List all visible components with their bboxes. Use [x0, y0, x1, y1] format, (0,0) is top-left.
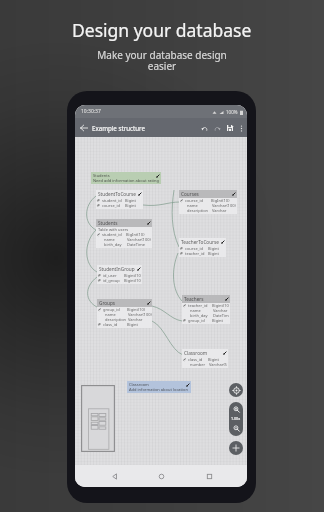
button[interactable]: Redo [211, 122, 223, 134]
staticText: Students [93, 173, 110, 178]
staticText: birth_day [104, 242, 122, 247]
staticText: StudentToCourse [98, 191, 136, 197]
button[interactable]: StudentInGroup [97, 265, 142, 284]
staticText: id_user [103, 273, 117, 278]
staticText: Bigint [208, 246, 220, 251]
staticText: name [104, 237, 115, 242]
button[interactable]: StudentToCourse [96, 190, 143, 209]
button[interactable]: Courses [179, 190, 237, 214]
staticText: Courses [181, 191, 199, 197]
staticText: DateTime [127, 242, 146, 247]
staticText: TeacherToCourse [181, 239, 219, 245]
staticText: Design your database [72, 18, 252, 42]
staticText: course_id [185, 246, 203, 251]
button[interactable]: Zoom in [229, 402, 243, 416]
staticText: name [187, 203, 198, 208]
staticText: Varchar(100) [212, 203, 236, 208]
staticText: 1.00x [231, 416, 241, 421]
staticText: Bigint(10) [124, 273, 142, 278]
staticText: description [187, 208, 209, 213]
button[interactable]: Navigate up [77, 121, 90, 134]
staticText: 100% [226, 109, 238, 115]
staticText: course_id [102, 203, 120, 208]
button[interactable]: More options [236, 123, 246, 133]
staticText: id_group [103, 278, 120, 283]
staticText: Need add information about rating [93, 178, 159, 183]
staticText: number [190, 362, 206, 367]
staticText: Varchar(100) [128, 312, 152, 317]
staticText: Make your database design easier [97, 48, 227, 73]
button[interactable]: Recent apps [200, 467, 218, 485]
staticText: student_id [102, 198, 122, 203]
staticText: DateTime [213, 313, 230, 318]
staticText: birth_day [190, 313, 208, 318]
staticText: Bigint [208, 251, 220, 256]
staticText: BigInt(10) [211, 198, 230, 203]
staticText: teacher_id [185, 251, 205, 256]
staticText: Varchar [212, 208, 227, 213]
button[interactable]: Teachers [182, 295, 230, 324]
staticText: student_id [102, 232, 122, 237]
button[interactable]: Add table [229, 441, 243, 455]
staticText: group_id [103, 307, 120, 312]
staticText: Bigint [125, 198, 137, 203]
staticText: Add information about location [129, 387, 188, 392]
staticText: Bigint(10) [124, 278, 142, 283]
staticText: teacher_id [188, 303, 208, 308]
button[interactable]: TeacherToCourse [179, 238, 226, 257]
staticText: BigInt(10) [126, 232, 145, 237]
button[interactable]: Minimap [81, 385, 115, 452]
staticText: class_id [103, 322, 118, 327]
staticText: Varchar(5) [209, 362, 228, 367]
staticText: Bigint(10) [212, 303, 230, 308]
staticText: Bigint [127, 322, 139, 327]
staticText: name [105, 312, 116, 317]
button[interactable]: Center view [229, 383, 243, 397]
button[interactable]: Home [152, 467, 170, 485]
button[interactable]: Students [96, 219, 152, 248]
button[interactable]: Groups [97, 299, 152, 328]
staticText: course_id [185, 198, 203, 203]
button[interactable]: Classroom [182, 349, 228, 368]
staticText: Example structure [92, 124, 145, 132]
button[interactable]: Zoom out [229, 421, 243, 435]
staticText: Students [98, 220, 118, 226]
staticText: Table with users [98, 227, 129, 232]
staticText: Classroom [129, 382, 149, 387]
button[interactable]: Save [224, 122, 236, 134]
staticText: Bigint(10) [127, 307, 146, 312]
staticText: Bigint [212, 318, 224, 323]
staticText: class_id [188, 357, 203, 362]
staticText: Bigint [208, 357, 220, 362]
staticText: Bigint [125, 203, 137, 208]
staticText: description [105, 317, 127, 322]
staticText: group_id [188, 318, 205, 323]
button[interactable]: Students [91, 172, 161, 184]
staticText: StudentInGroup [99, 266, 135, 272]
staticText: 10:30:37 [81, 108, 101, 115]
staticText: Groups [99, 300, 116, 306]
staticText: Teachers [184, 296, 204, 302]
staticText: Varchar [213, 308, 228, 313]
staticText: Varchar [128, 317, 143, 322]
button[interactable]: Classroom [127, 381, 191, 393]
button[interactable]: Back [105, 467, 123, 485]
staticText: name [190, 308, 201, 313]
staticText: Varchar(100) [127, 237, 151, 242]
button[interactable]: Undo [198, 122, 210, 134]
staticText: Classroom [184, 350, 208, 356]
